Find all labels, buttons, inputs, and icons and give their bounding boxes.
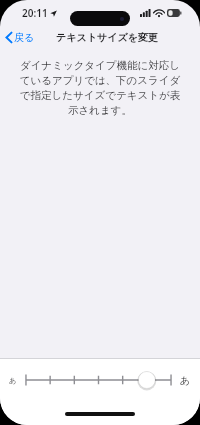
staticText: ダイナミックタイプ機能に対応しているアプリでは、下のスライダで指定したサイズでテ… [16,59,184,117]
button[interactable]: テキストサイズ スライダ [17,366,180,394]
staticText: テキストサイズを変更 [56,31,158,44]
staticText: 戻る [14,31,35,44]
staticText: あ [180,374,191,387]
staticText: 20:11 [22,6,48,20]
staticText: あ [9,376,17,385]
button[interactable]: 戻る [0,28,41,47]
